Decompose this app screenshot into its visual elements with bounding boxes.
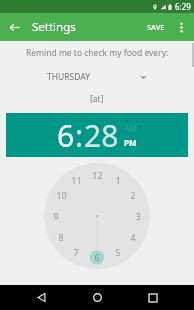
button[interactable]: AM	[124, 122, 138, 133]
staticText: Remind me to check my food every:	[26, 47, 169, 59]
staticText: 28	[84, 115, 119, 156]
button[interactable]: Back	[0, 13, 28, 41]
button[interactable]: SAVE	[142, 15, 170, 39]
button[interactable]: 6	[57, 115, 75, 156]
button[interactable]: More options	[170, 16, 192, 38]
staticText: 10	[56, 189, 67, 201]
button[interactable]: Back	[26, 285, 56, 310]
staticText: 6:29	[175, 1, 191, 12]
staticText: 11	[71, 174, 82, 186]
staticText: 8	[58, 231, 64, 243]
staticText: 6	[57, 115, 75, 156]
staticText: SAVE	[147, 22, 165, 32]
staticText: THURSDAY	[47, 71, 90, 83]
staticText: 1	[115, 174, 121, 186]
button[interactable]: Home	[82, 285, 112, 310]
staticText: 3	[135, 210, 141, 222]
button[interactable]: Recent apps	[138, 285, 168, 310]
staticText: 7	[73, 246, 79, 258]
staticText: :	[75, 115, 84, 156]
button[interactable]: 28	[84, 115, 119, 156]
staticText: 4	[130, 231, 136, 243]
staticText: 2	[130, 189, 136, 201]
staticText: AM	[124, 122, 138, 133]
button[interactable]: PM	[124, 137, 137, 148]
staticText: PM	[124, 137, 137, 148]
staticText: Settings	[32, 19, 76, 35]
staticText: 9	[53, 210, 59, 222]
staticText: 5	[115, 246, 121, 258]
staticText: [at]	[90, 93, 104, 105]
staticText: 12	[92, 169, 103, 181]
button[interactable]: Select hour	[44, 163, 150, 269]
button[interactable]: THURSDAY	[47, 69, 147, 85]
staticText: 6	[94, 251, 100, 263]
